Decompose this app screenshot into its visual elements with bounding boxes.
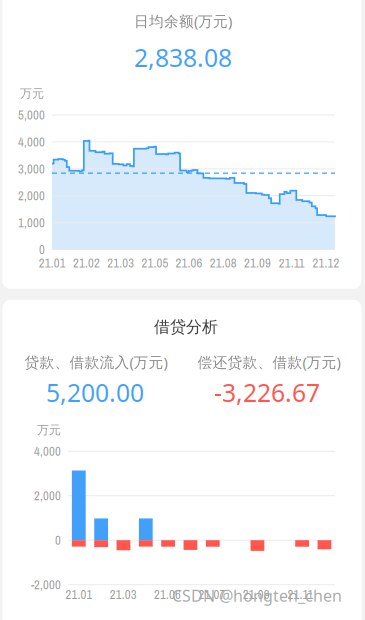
- staticText: 21.03: [107, 254, 134, 272]
- staticText: 偿还贷款、借款(万元): [197, 352, 340, 372]
- staticText: 21.06: [176, 254, 203, 272]
- staticText: 4,000: [18, 133, 45, 150]
- staticText: 21.01: [65, 586, 92, 603]
- staticText: 21.07: [198, 586, 225, 603]
- staticText: 21.03: [110, 586, 137, 603]
- staticText: 2,838.08: [134, 41, 232, 74]
- staticText: 1,000: [18, 214, 45, 231]
- staticText: 万元: [37, 423, 61, 437]
- staticText: 21.11: [287, 586, 313, 603]
- staticText: -3,226.67: [214, 376, 320, 409]
- staticText: 21.12: [312, 254, 339, 272]
- staticText: 21.09: [243, 586, 270, 603]
- staticText: 借贷分析: [154, 317, 218, 337]
- staticText: 0: [55, 532, 61, 549]
- staticText: 21.08: [210, 254, 237, 272]
- staticText: 贷款、借款流入(万元): [24, 352, 167, 372]
- staticText: 0: [39, 241, 45, 258]
- staticText: 日均余额(万元): [134, 11, 232, 31]
- staticText: 2,000: [18, 187, 45, 204]
- staticText: CSDN @hongten_chen: [172, 585, 342, 606]
- staticText: 2,000: [34, 487, 61, 504]
- staticText: 21.02: [73, 254, 100, 272]
- staticText: 21.05: [141, 254, 168, 272]
- staticText: 4,000: [34, 443, 61, 460]
- staticText: 5,000: [18, 106, 45, 124]
- staticText: 5,200.00: [46, 376, 144, 409]
- staticText: 21.09: [244, 254, 271, 272]
- staticText: 21.11: [279, 254, 305, 272]
- staticText: 21.06: [154, 586, 181, 603]
- staticText: 21.01: [39, 254, 66, 272]
- staticText: -2,000: [31, 576, 61, 593]
- staticText: 3,000: [18, 160, 45, 177]
- staticText: 万元: [20, 86, 44, 101]
